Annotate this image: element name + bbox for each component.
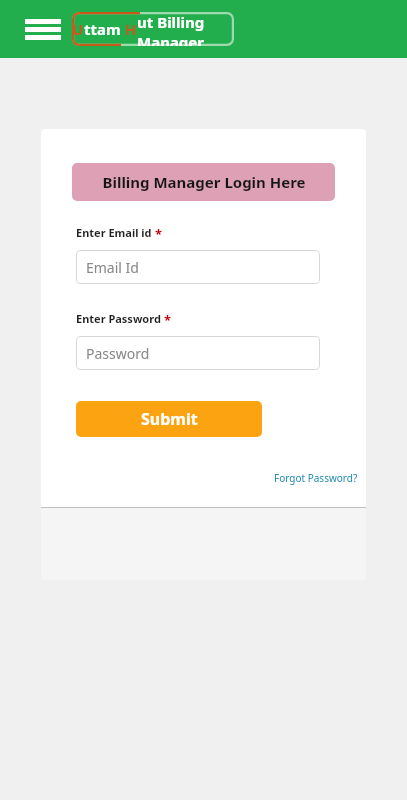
staticText: *: [155, 225, 163, 243]
staticText: Submit: [141, 408, 198, 430]
button[interactable]: Submit: [76, 401, 262, 437]
staticText: Password: [86, 344, 150, 363]
staticText: U: [72, 19, 84, 39]
staticText: Billing Manager Login Here: [102, 172, 306, 192]
button[interactable]: Forgot Password?: [272, 469, 360, 487]
staticText: *: [164, 311, 172, 329]
button[interactable]: Billing Manager Login Here: [72, 163, 335, 201]
staticText: ut Billing Manager: [137, 12, 234, 46]
staticText: H: [125, 19, 137, 39]
button[interactable]: Password: [76, 336, 320, 370]
staticText: Email Id: [86, 258, 139, 277]
button[interactable]: Open navigation menu: [20, 12, 66, 46]
staticText: Forgot Password?: [274, 471, 358, 485]
staticText: Enter Email id: [76, 225, 152, 240]
button[interactable]: Email Id: [76, 250, 320, 284]
staticText: Enter Password: [76, 311, 161, 326]
staticText: ttam: [84, 19, 125, 39]
button[interactable]: U: [72, 12, 234, 46]
